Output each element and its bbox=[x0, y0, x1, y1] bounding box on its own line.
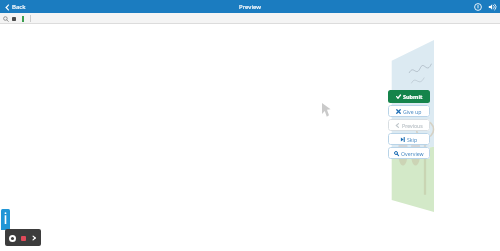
button[interactable]: Zoom bbox=[2, 15, 9, 22]
staticText: Give up bbox=[403, 108, 422, 115]
staticText: Skip bbox=[407, 136, 418, 143]
button[interactable]: Overview bbox=[388, 147, 430, 159]
button[interactable]: Expand bbox=[30, 234, 38, 242]
staticText: Submit bbox=[403, 93, 423, 100]
button[interactable]: Give up bbox=[388, 105, 430, 117]
button: Previous bbox=[388, 119, 430, 131]
button[interactable]: Information bbox=[473, 2, 482, 11]
button[interactable]: Record bbox=[8, 234, 16, 242]
button[interactable]: Skip bbox=[388, 133, 430, 145]
button[interactable]: Sound bbox=[487, 2, 496, 11]
staticText: Preview bbox=[239, 3, 261, 11]
staticText: Back bbox=[12, 3, 26, 11]
staticText: Overview bbox=[401, 150, 424, 157]
button[interactable]: Back bbox=[3, 2, 28, 12]
button[interactable]: Feedback bbox=[1, 209, 10, 230]
button[interactable]: Layers bbox=[11, 16, 17, 22]
staticText: Previous bbox=[402, 122, 423, 129]
button[interactable]: Stop bbox=[19, 234, 27, 242]
button[interactable]: Submit bbox=[388, 90, 430, 103]
